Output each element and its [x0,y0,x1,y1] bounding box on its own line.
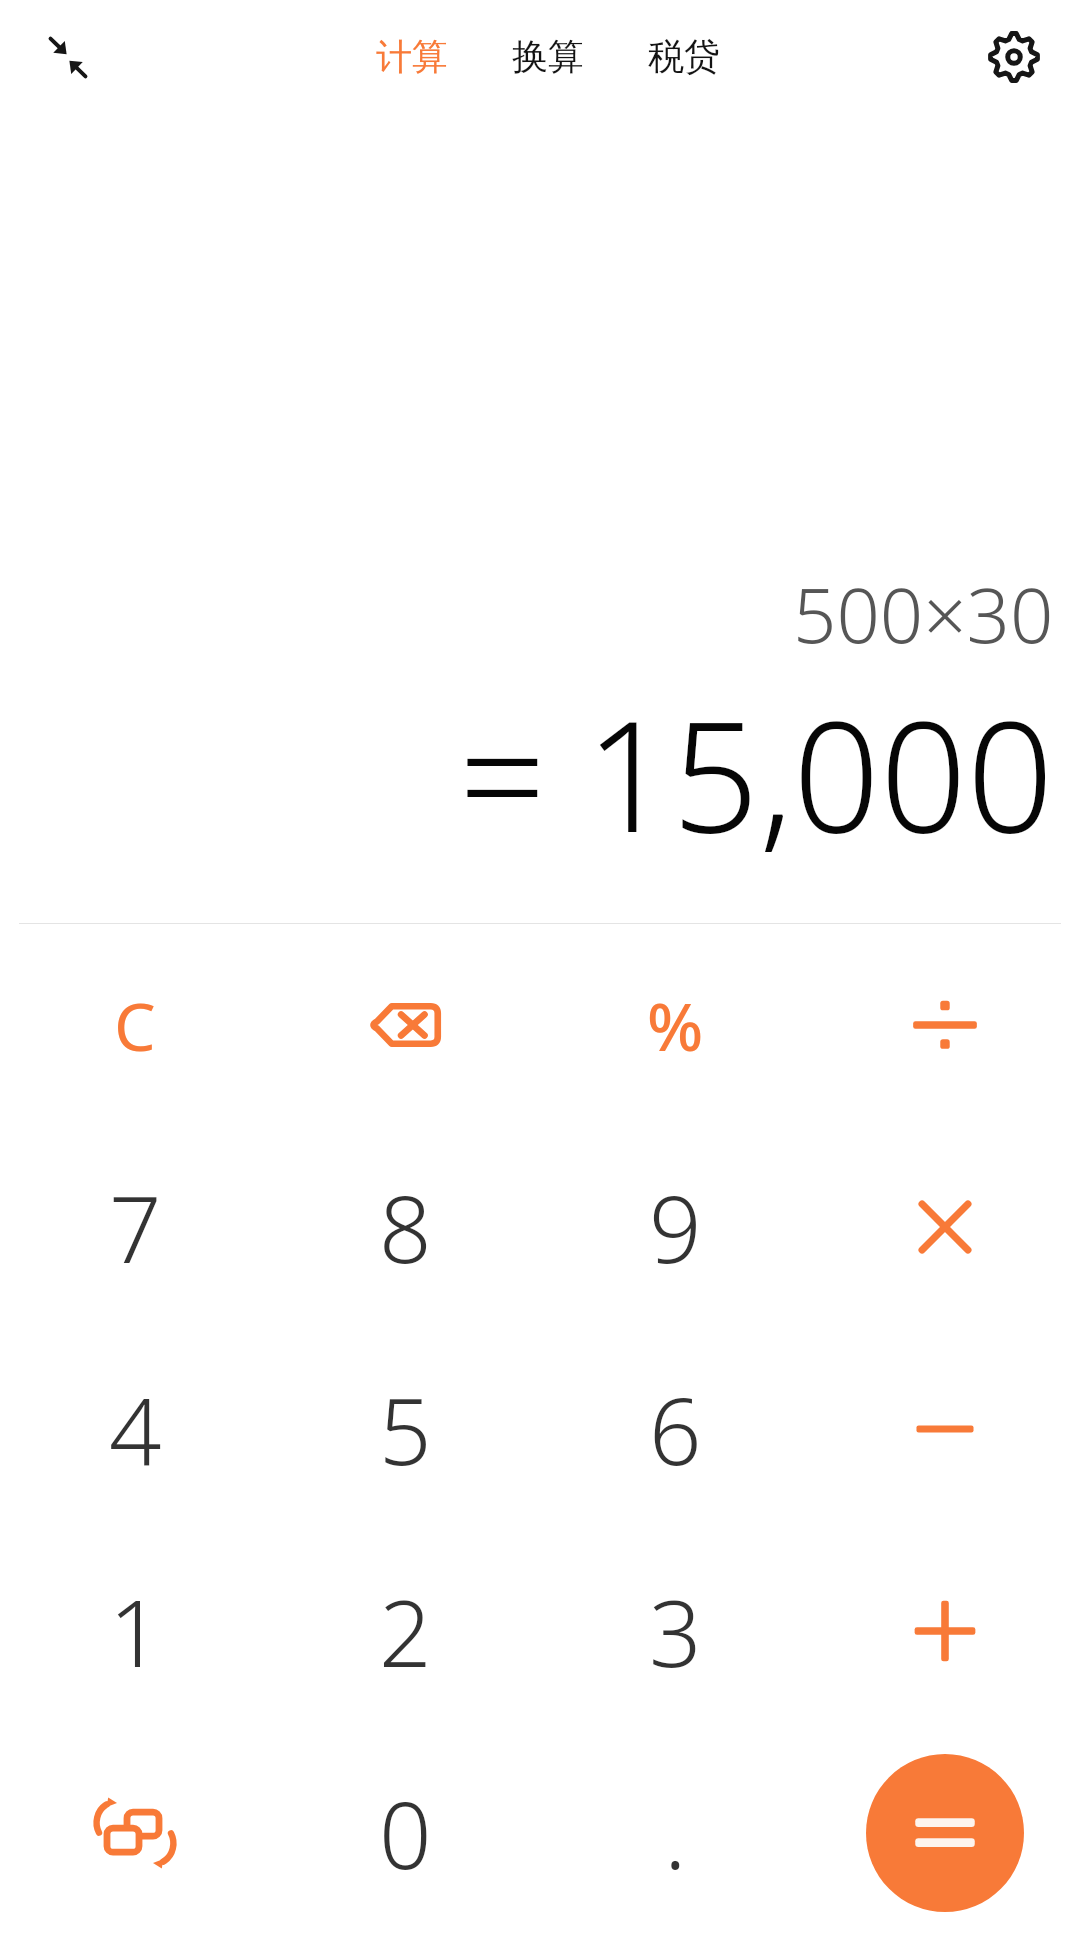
staticText: 换算 [512,34,584,79]
button[interactable]: Equals [866,1754,1024,1912]
button[interactable]: 6 [540,1328,810,1530]
button[interactable]: 4 [0,1328,270,1530]
staticText: 0 [379,1771,432,1896]
button[interactable]: 8 [270,1126,540,1328]
button[interactable]: Divide [810,924,1080,1126]
button[interactable]: 计算 [372,22,452,91]
button[interactable]: 7 [0,1126,270,1328]
button[interactable]: 9 [540,1126,810,1328]
button[interactable]: 换算 [508,22,588,91]
staticText: 9 [649,1165,702,1290]
button[interactable]: Minus [810,1328,1080,1530]
staticText: = 15,000 [459,670,1054,877]
button[interactable]: 3 [540,1530,810,1732]
staticText: C [114,980,156,1070]
staticText: 6 [649,1367,702,1492]
button[interactable]: % [540,924,810,1126]
staticText: 7 [109,1165,162,1290]
button[interactable]: 5 [270,1328,540,1530]
button[interactable]: 税贷 [644,22,724,91]
staticText: 1 [109,1569,162,1694]
button[interactable]: C [0,924,270,1126]
button[interactable]: Multiply [810,1126,1080,1328]
staticText: 3 [649,1569,702,1694]
staticText: . [664,1771,687,1896]
staticText: 8 [379,1165,432,1290]
staticText: 2 [379,1569,432,1694]
button[interactable]: Backspace [270,924,540,1126]
staticText: 500×30 [793,562,1054,666]
staticText: 4 [109,1367,162,1492]
staticText: % [647,980,704,1070]
button[interactable]: 1 [0,1530,270,1732]
button[interactable]: . [540,1732,810,1934]
button[interactable]: 0 [270,1732,540,1934]
button[interactable]: Settings [982,25,1046,89]
staticText: 税贷 [648,34,720,79]
staticText: 5 [379,1367,432,1492]
button[interactable]: Collapse [36,25,100,89]
button[interactable]: Convert units [0,1732,270,1934]
button[interactable]: 2 [270,1530,540,1732]
staticText: 计算 [376,34,448,79]
button[interactable]: Plus [810,1530,1080,1732]
